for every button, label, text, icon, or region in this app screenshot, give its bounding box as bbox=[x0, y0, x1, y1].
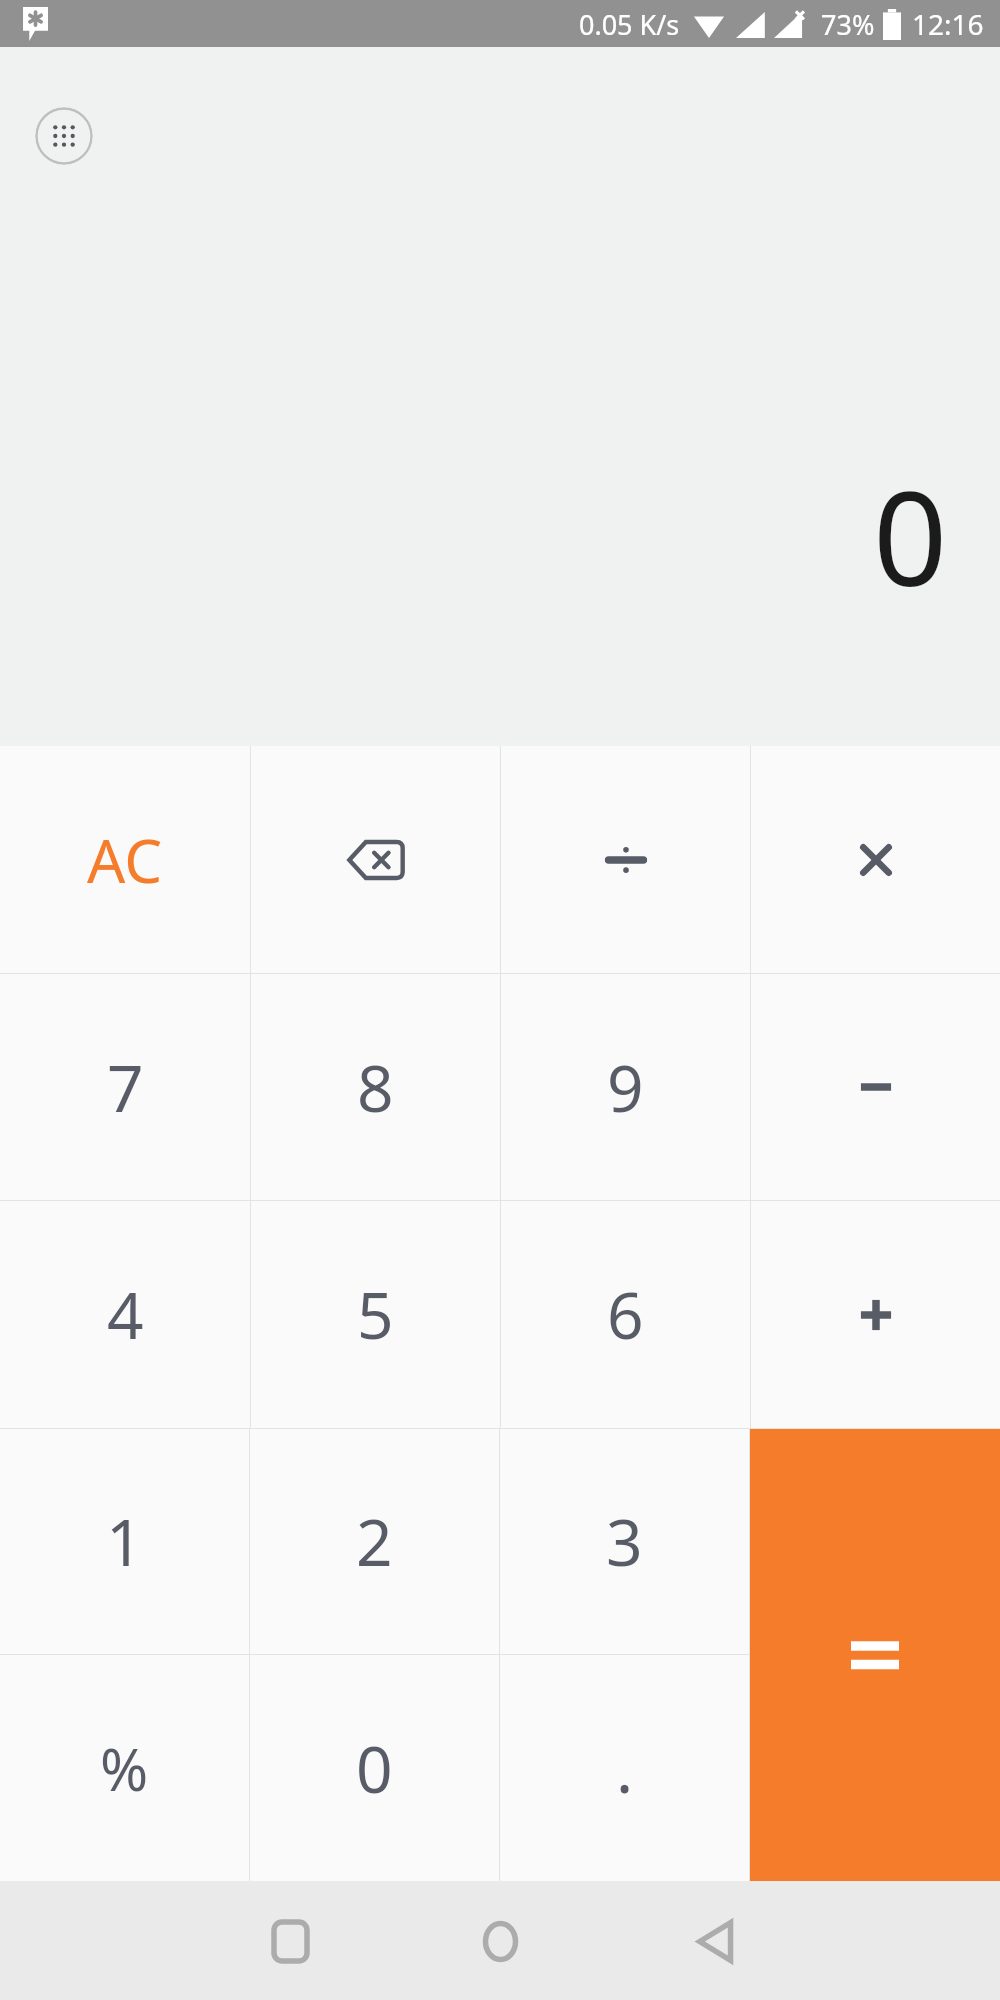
button[interactable]: % bbox=[0, 1655, 249, 1881]
staticText: 2 bbox=[356, 1498, 393, 1585]
button[interactable]: Minus bbox=[751, 974, 1000, 1200]
button[interactable]: AC bbox=[0, 746, 250, 973]
staticText: 0 bbox=[356, 1725, 393, 1812]
button[interactable]: . bbox=[500, 1655, 749, 1881]
staticText: AC bbox=[87, 819, 163, 901]
staticText: 6 bbox=[607, 1271, 644, 1358]
button[interactable]: Home bbox=[460, 1901, 540, 1981]
staticText: 73% bbox=[821, 6, 875, 43]
button[interactable]: 9 bbox=[501, 974, 750, 1200]
staticText: 4 bbox=[107, 1271, 144, 1358]
button[interactable]: Multiply bbox=[751, 746, 1000, 973]
button[interactable]: 6 bbox=[501, 1201, 750, 1428]
staticText: 9 bbox=[607, 1044, 644, 1131]
button[interactable]: 2 bbox=[250, 1429, 499, 1654]
staticText: % bbox=[100, 1729, 149, 1808]
button[interactable]: Recents bbox=[250, 1901, 330, 1981]
staticText: 5 bbox=[357, 1271, 394, 1358]
button[interactable]: Back bbox=[675, 1901, 755, 1981]
staticText: 8 bbox=[357, 1044, 394, 1131]
button[interactable]: 7 bbox=[0, 974, 250, 1200]
staticText: 3 bbox=[606, 1498, 643, 1585]
button[interactable]: 3 bbox=[500, 1429, 749, 1654]
button[interactable]: 8 bbox=[251, 974, 500, 1200]
button[interactable]: Backspace bbox=[251, 746, 500, 973]
button[interactable]: Divide bbox=[501, 746, 750, 973]
staticText: 7 bbox=[107, 1044, 144, 1131]
button[interactable]: 0 bbox=[250, 1655, 499, 1881]
button[interactable]: 4 bbox=[0, 1201, 250, 1428]
button[interactable]: Apps bbox=[35, 107, 93, 165]
button[interactable]: 1 bbox=[0, 1429, 249, 1654]
staticText: 0.05 K/s bbox=[579, 6, 680, 43]
staticText: 12:16 bbox=[912, 5, 984, 43]
staticText: 0 bbox=[873, 447, 948, 624]
staticText: . bbox=[616, 1725, 634, 1812]
button[interactable]: Plus bbox=[751, 1201, 1000, 1428]
button[interactable]: Equals bbox=[750, 1429, 1000, 1881]
button[interactable]: 5 bbox=[251, 1201, 500, 1428]
staticText: 1 bbox=[106, 1498, 143, 1585]
